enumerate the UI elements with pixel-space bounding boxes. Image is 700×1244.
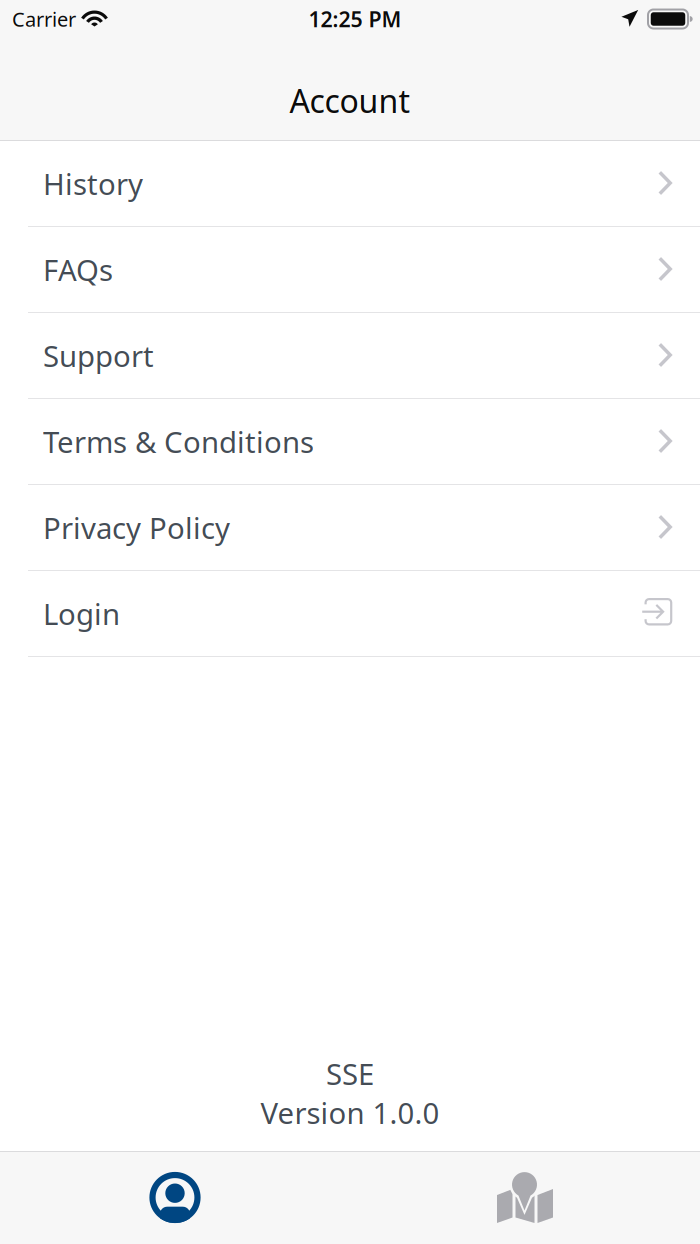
- staticText: Support: [43, 336, 154, 375]
- staticText: Login: [43, 594, 120, 633]
- staticText: Terms & Conditions: [43, 422, 314, 461]
- staticText: 12:25 PM: [308, 5, 401, 33]
- button[interactable]: FAQs: [0, 227, 700, 313]
- staticText: Version 1.0.0: [260, 1093, 439, 1132]
- button[interactable]: Terms & Conditions: [0, 399, 700, 485]
- button[interactable]: Support: [0, 313, 700, 399]
- staticText: Privacy Policy: [43, 508, 230, 547]
- staticText: Account: [289, 79, 410, 122]
- button[interactable]: Privacy Policy: [0, 485, 700, 571]
- staticText: Carrier: [12, 6, 76, 32]
- button[interactable]: History: [0, 141, 700, 227]
- staticText: FAQs: [43, 250, 113, 289]
- button[interactable]: Account: [0, 1151, 350, 1244]
- button[interactable]: Login: [0, 571, 700, 657]
- button[interactable]: Map: [350, 1151, 700, 1244]
- staticText: History: [43, 164, 143, 203]
- staticText: SSE: [326, 1054, 374, 1093]
